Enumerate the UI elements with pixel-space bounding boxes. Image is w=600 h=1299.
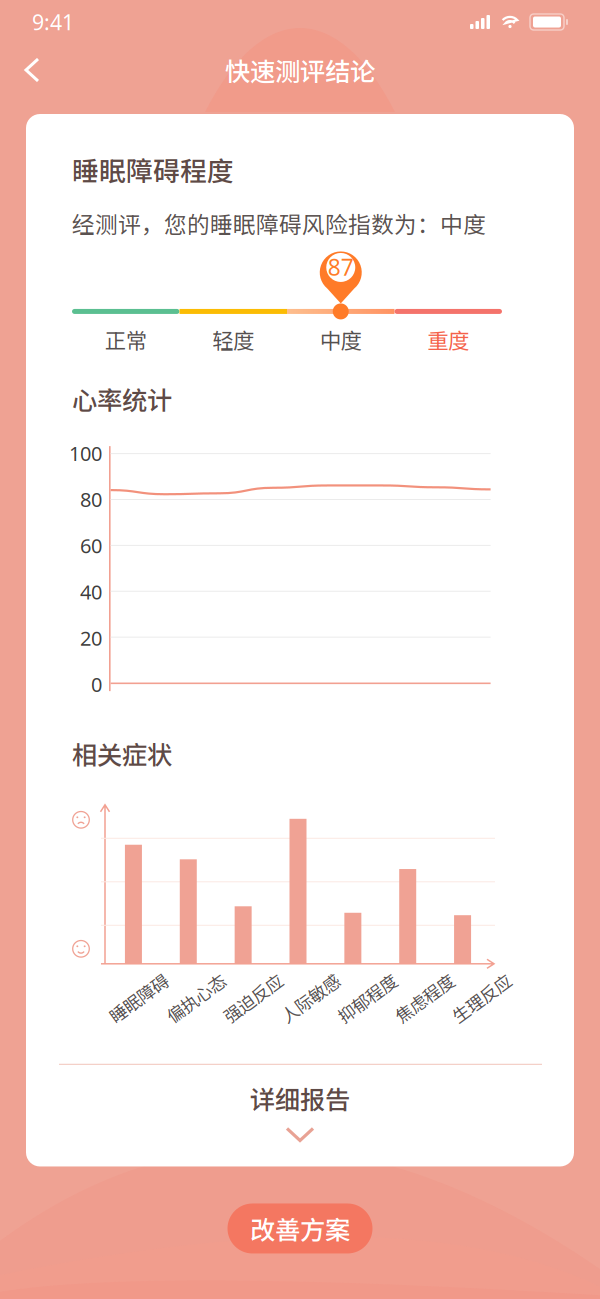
button[interactable]: 详细报告 [72, 1065, 528, 1166]
staticText: 87 [328, 251, 354, 282]
staticText: 中度 [320, 324, 362, 355]
staticText: 生理反应 [447, 985, 515, 1010]
staticText: 抑郁程度 [333, 985, 401, 1010]
staticText: 快速测评结论 [225, 52, 375, 88]
staticText: 睡眠障碍程度 [72, 150, 234, 189]
staticText: 20 [80, 624, 102, 651]
button[interactable]: 改善方案 [227, 1203, 372, 1253]
staticText: 80 [80, 486, 102, 513]
staticText: 改善方案 [250, 1210, 350, 1247]
staticText: 经测评，您的睡眠障碍风险指数为：中度 [72, 207, 486, 239]
staticText: 相关症状 [72, 735, 172, 772]
staticText: 100 [69, 439, 102, 467]
staticText: 强迫反应 [219, 985, 287, 1010]
staticText: 0 [91, 670, 102, 698]
staticText: 40 [80, 578, 102, 605]
staticText: 60 [80, 532, 102, 559]
staticText: 睡眠障碍 [105, 985, 173, 1010]
staticText: 焦虑程度 [390, 985, 458, 1010]
staticText: 偏执心态 [162, 985, 230, 1010]
staticText: 人际敏感 [276, 985, 344, 1010]
staticText: 详细报告 [250, 1080, 350, 1116]
staticText: 正常 [105, 324, 147, 355]
button[interactable]: Back [0, 47, 58, 93]
staticText: 心率统计 [72, 380, 172, 417]
staticText: 重度 [427, 324, 469, 355]
staticText: 9:41 [32, 7, 74, 37]
staticText: 轻度 [212, 324, 254, 355]
